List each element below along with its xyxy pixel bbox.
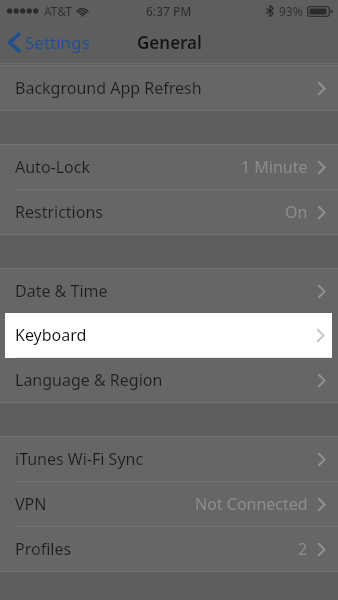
staticText: 6:37 PM	[146, 3, 192, 19]
button[interactable]: Auto-Lock	[0, 145, 338, 189]
button[interactable]: Keyboard	[5, 313, 332, 358]
button[interactable]: Date & Time	[0, 269, 338, 313]
staticText: 2	[298, 538, 308, 560]
staticText: Date & Time	[15, 280, 108, 302]
button[interactable]: Settings	[0, 24, 100, 61]
button[interactable]: VPN	[0, 482, 338, 526]
staticText: On	[285, 201, 308, 223]
staticText: Language & Region	[15, 369, 163, 391]
staticText: Restrictions	[15, 201, 103, 223]
staticText: 1 Minute	[241, 156, 308, 178]
staticText: Not Connected	[195, 493, 308, 515]
staticText: 93%	[279, 3, 303, 19]
staticText: iTunes Wi-Fi Sync	[15, 448, 144, 470]
staticText: VPN	[15, 493, 47, 515]
staticText: General	[137, 31, 202, 54]
staticText: AT&T	[44, 3, 72, 19]
button[interactable]: Background App Refresh	[0, 66, 338, 110]
button[interactable]: iTunes Wi-Fi Sync	[0, 437, 338, 481]
button[interactable]: Profiles	[0, 527, 338, 571]
staticText: Background App Refresh	[15, 77, 202, 99]
staticText: Profiles	[15, 538, 72, 560]
button[interactable]: Restrictions	[0, 190, 338, 234]
button[interactable]: Language & Region	[0, 358, 338, 402]
staticText: Auto-Lock	[15, 156, 91, 178]
staticText: Settings	[25, 31, 90, 54]
staticText: Keyboard	[15, 324, 87, 346]
